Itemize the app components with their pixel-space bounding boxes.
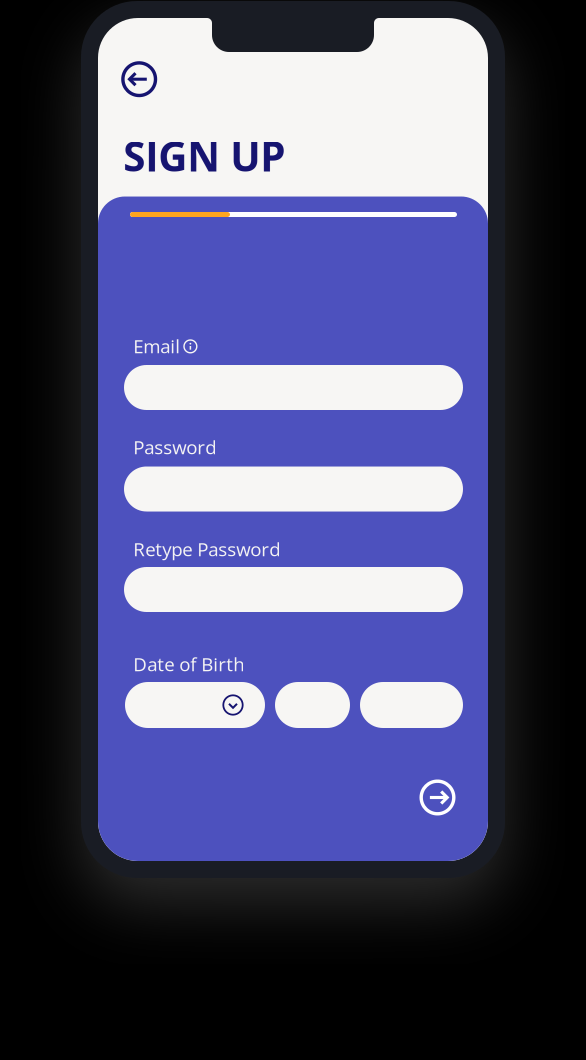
button[interactable]: Day (125, 682, 265, 728)
staticText: Retype Password (133, 536, 280, 562)
staticText: Email (133, 333, 180, 359)
button[interactable]: Month (275, 682, 350, 728)
staticText: SIGN UP (123, 129, 285, 183)
button[interactable]: Back (121, 61, 157, 97)
staticText: Date of Birth (133, 651, 244, 677)
button[interactable]: Next (419, 779, 455, 815)
button[interactable]: Year (360, 682, 463, 728)
staticText: Password (133, 434, 216, 460)
